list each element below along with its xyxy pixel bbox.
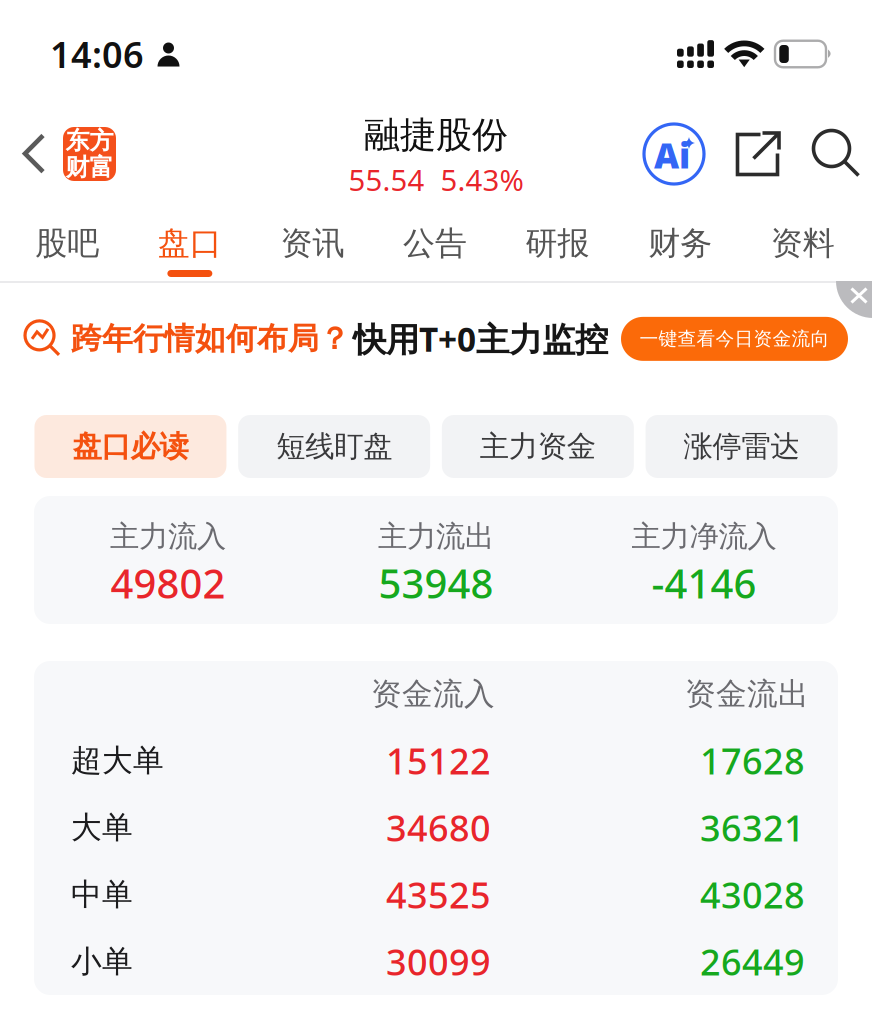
staticText: 东方	[65, 126, 113, 155]
staticText: 36321	[700, 804, 805, 851]
button[interactable]: 短线盯盘	[238, 415, 430, 478]
staticText: 43525	[386, 871, 491, 918]
staticText: 14:06	[50, 30, 144, 78]
staticText: 跨年行情如何布局？	[71, 320, 350, 358]
staticText: 主力流出	[378, 518, 494, 554]
staticText: 超大单	[71, 742, 164, 779]
staticText: 融捷股份	[364, 113, 508, 157]
button[interactable]: 公告	[374, 200, 496, 281]
staticText: 53948	[378, 556, 493, 610]
staticText: 26449	[700, 938, 805, 985]
staticText: 主力流入	[110, 518, 226, 554]
staticText: Ai	[654, 132, 690, 178]
staticText: 资金流出	[685, 675, 809, 713]
staticText: 大单	[71, 809, 133, 846]
button[interactable]: 资料	[741, 200, 864, 281]
staticText: -4146	[651, 556, 756, 610]
button[interactable]: Share	[720, 108, 796, 200]
staticText: 资金流入	[371, 675, 495, 713]
staticText: 快用T+0主力监控	[353, 317, 608, 361]
staticText: 资讯	[280, 224, 344, 263]
staticText: 17628	[700, 737, 805, 784]
button[interactable]: Back	[0, 108, 126, 200]
staticText: 15122	[386, 737, 491, 784]
staticText: 主力资金	[480, 428, 596, 464]
staticText: 34680	[386, 804, 491, 851]
staticText: 公告	[403, 224, 467, 263]
staticText: 财富	[65, 152, 113, 182]
staticText: 研报	[526, 224, 590, 263]
staticText: 股吧	[35, 224, 99, 263]
staticText: 盘口	[158, 224, 222, 263]
button[interactable]: 股吧	[6, 200, 129, 281]
staticText: 资料	[771, 224, 835, 263]
staticText: 涨停雷达	[683, 428, 799, 464]
button[interactable]: 盘口	[129, 200, 251, 281]
staticText: 盘口必读	[72, 428, 188, 464]
button[interactable]: AI assistant	[628, 108, 720, 200]
staticText: 5.43%	[440, 160, 523, 199]
button[interactable]: 研报	[496, 200, 619, 281]
button[interactable]: 涨停雷达	[645, 415, 837, 478]
button[interactable]: Search	[807, 108, 867, 200]
button[interactable]: 财务	[619, 200, 741, 281]
staticText: 小单	[71, 943, 133, 980]
button[interactable]: Close banner	[836, 281, 872, 321]
button[interactable]: 跨年行情如何布局？	[0, 283, 872, 379]
staticText: 中单	[71, 876, 133, 913]
staticText: 主力净流入	[631, 518, 776, 554]
staticText: 短线盯盘	[276, 428, 392, 464]
staticText: 49802	[110, 556, 225, 610]
staticText: 43028	[700, 871, 805, 918]
staticText: 55.54	[348, 160, 424, 199]
staticText: 一键查看今日资金流向	[639, 327, 829, 350]
staticText: 财务	[648, 224, 712, 263]
button[interactable]: 盘口必读	[34, 415, 226, 478]
staticText: 30099	[386, 938, 491, 985]
button[interactable]: 主力资金	[442, 415, 634, 478]
button[interactable]: 资讯	[251, 200, 374, 281]
